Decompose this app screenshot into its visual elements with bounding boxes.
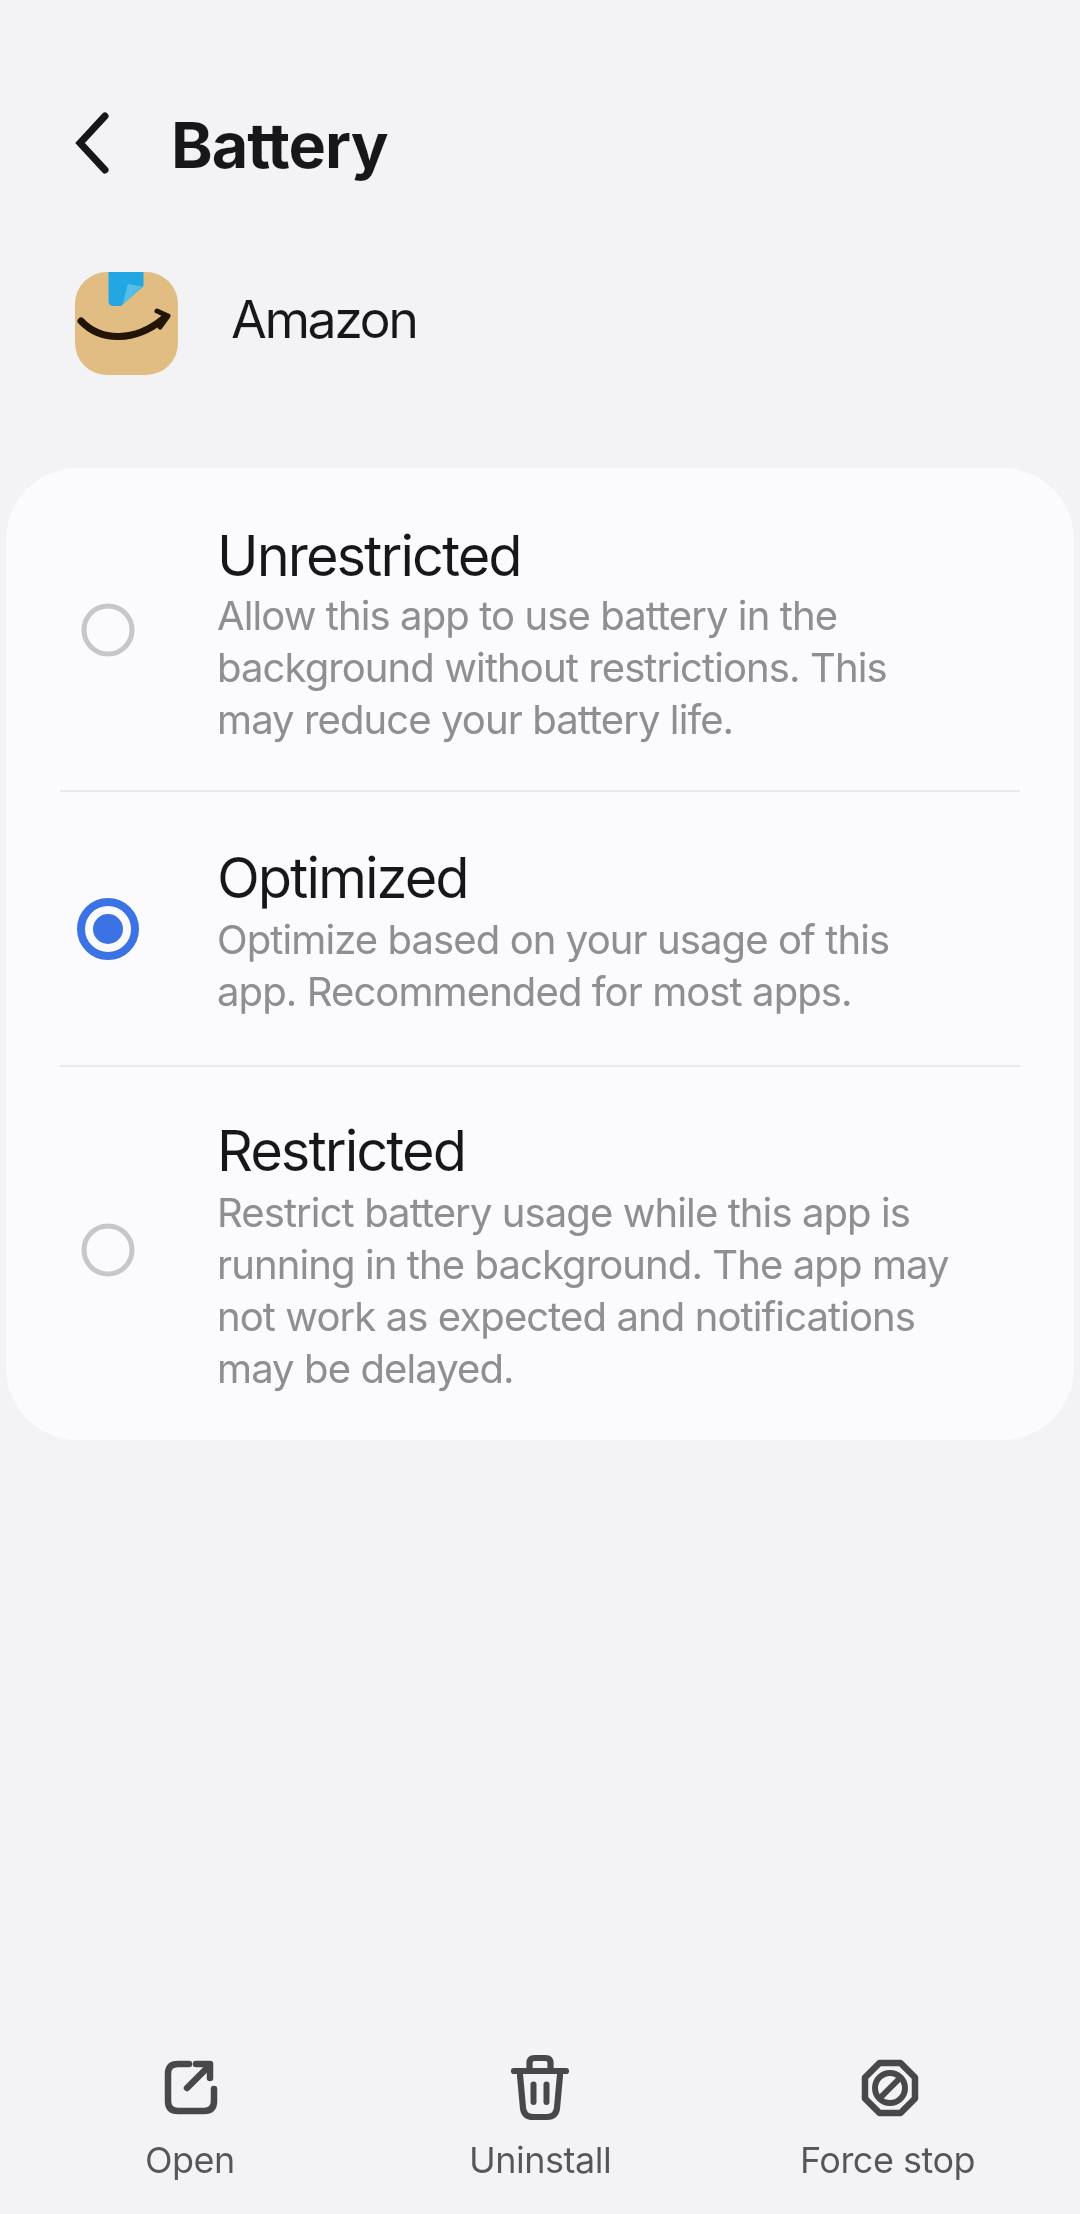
staticText: Restricted [217, 1117, 465, 1185]
staticText: Unrestricted [217, 522, 521, 590]
button[interactable]: Uninstall [365, 2030, 715, 2214]
staticText: Open [145, 2138, 235, 2182]
staticText: Battery [171, 107, 388, 183]
staticText: Amazon [231, 288, 417, 351]
staticText: not work as expected and notifications [217, 1292, 916, 1340]
staticText: Restrict battery usage while this app is [217, 1188, 911, 1236]
staticText: Optimize based on your usage of this [217, 915, 890, 963]
staticText: running in the background. The app may [217, 1240, 949, 1288]
staticText: Allow this app to use battery in the [217, 591, 838, 639]
staticText: may reduce your battery life. [217, 695, 734, 743]
button[interactable] [6, 792, 1074, 1066]
button[interactable] [60, 110, 124, 174]
staticText: Force stop [800, 2138, 976, 2182]
staticText: background without restrictions. This [217, 643, 887, 691]
button[interactable]: Force stop [713, 2030, 1063, 2214]
staticText: Optimized [217, 844, 468, 912]
button[interactable] [6, 1067, 1074, 1440]
button[interactable]: Open [15, 2030, 365, 2214]
staticText: may be delayed. [217, 1344, 514, 1392]
staticText: Uninstall [469, 2138, 612, 2182]
staticText: app. Recommended for most apps. [217, 967, 852, 1015]
button[interactable] [6, 498, 1074, 790]
